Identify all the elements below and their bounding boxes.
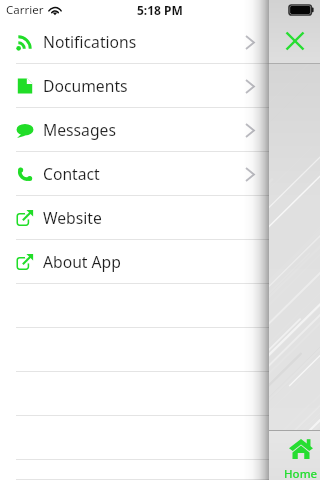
button[interactable]: Close menu xyxy=(280,26,310,56)
staticText: Home xyxy=(284,466,318,480)
staticText: 5:18 PM xyxy=(137,2,183,18)
staticText: Contact xyxy=(43,163,100,184)
staticText: Notifications xyxy=(43,31,137,52)
button[interactable]: About App xyxy=(0,240,269,284)
staticText: Documents xyxy=(43,75,128,96)
button[interactable]: Notifications xyxy=(0,20,269,64)
staticText: Website xyxy=(43,207,102,228)
button[interactable]: Messages xyxy=(0,108,269,152)
staticText: About App xyxy=(43,251,121,272)
button[interactable]: Website xyxy=(0,196,269,240)
button[interactable]: Home xyxy=(277,430,320,480)
button[interactable]: Documents xyxy=(0,64,269,108)
staticText: Carrier xyxy=(6,2,44,18)
button[interactable]: Contact xyxy=(0,152,269,196)
staticText: Messages xyxy=(43,119,116,140)
